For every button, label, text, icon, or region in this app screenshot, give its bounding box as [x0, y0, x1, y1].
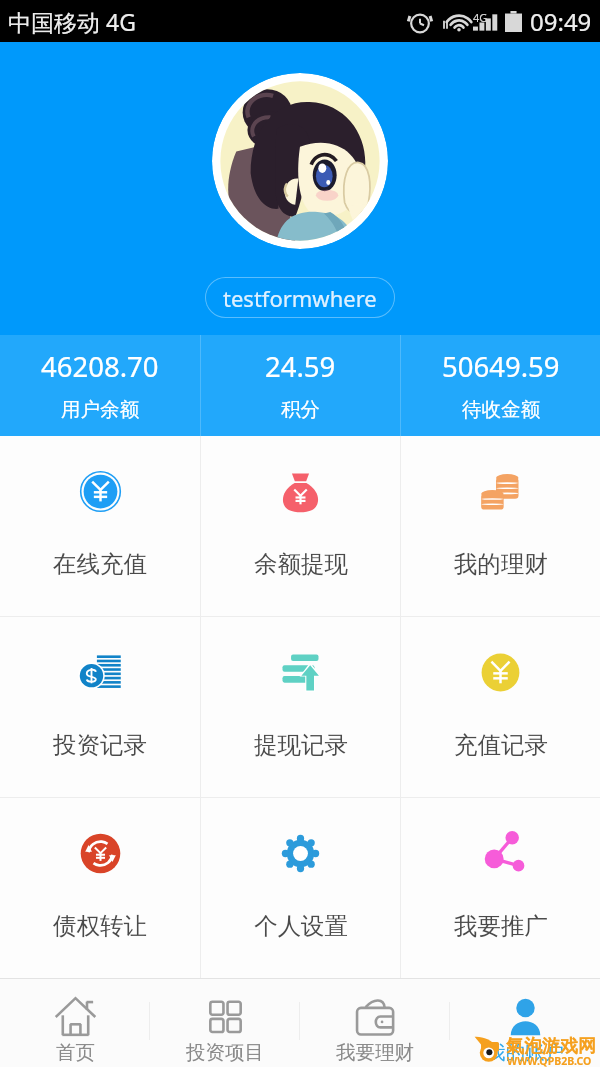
button[interactable]: 首页 [0, 979, 150, 1067]
button[interactable]: 24.59 [201, 335, 400, 436]
staticText: 充值记录 [454, 730, 548, 760]
staticText: 余额提现 [254, 549, 348, 579]
button[interactable]: 我要理财 [300, 979, 450, 1067]
staticText: 50649.59 [442, 348, 560, 385]
button[interactable]: 充值记录 [401, 617, 600, 797]
staticText: 46208.70 [41, 348, 159, 385]
staticText: 债权转让 [53, 911, 147, 941]
button[interactable]: 余额提现 [201, 436, 400, 616]
button[interactable]: 债权转让 [0, 798, 200, 978]
staticText: 09:49 [530, 5, 592, 38]
button[interactable]: 个人设置 [201, 798, 400, 978]
staticText: 积分 [281, 397, 320, 422]
staticText: 我要推广 [454, 911, 548, 941]
button[interactable]: Avatar [212, 73, 388, 249]
button[interactable]: 我的账户 [450, 979, 600, 1067]
staticText: testformwhere [223, 283, 377, 313]
staticText: 首页 [56, 1040, 95, 1065]
staticText: 我的理财 [454, 549, 548, 579]
staticText: 投资项目 [186, 1040, 264, 1065]
staticText: 我的账户 [486, 1040, 564, 1065]
button[interactable]: 46208.70 [0, 335, 200, 436]
button[interactable]: testformwhere [205, 277, 395, 318]
button[interactable]: 投资项目 [150, 979, 300, 1067]
button[interactable]: 我要推广 [401, 798, 600, 978]
button[interactable]: 投资记录 [0, 617, 200, 797]
staticText: WWW.QPB2B.COM [507, 1054, 600, 1067]
staticText: 待收金额 [462, 397, 540, 422]
staticText: 我要理财 [336, 1040, 414, 1065]
staticText: 氣泡游戏网 [506, 1035, 596, 1058]
button[interactable]: 提现记录 [201, 617, 400, 797]
staticText: 24.59 [265, 348, 336, 385]
button[interactable]: 50649.59 [401, 335, 600, 436]
staticText: 中国移动 4G [8, 6, 136, 37]
staticText: 在线充值 [53, 549, 147, 579]
staticText: 投资记录 [53, 730, 147, 760]
staticText: 用户余额 [61, 397, 139, 422]
staticText: 提现记录 [254, 730, 348, 760]
button[interactable]: 在线充值 [0, 436, 200, 616]
button[interactable]: 我的理财 [401, 436, 600, 616]
staticText: 4G [473, 10, 488, 25]
staticText: 个人设置 [254, 911, 348, 941]
